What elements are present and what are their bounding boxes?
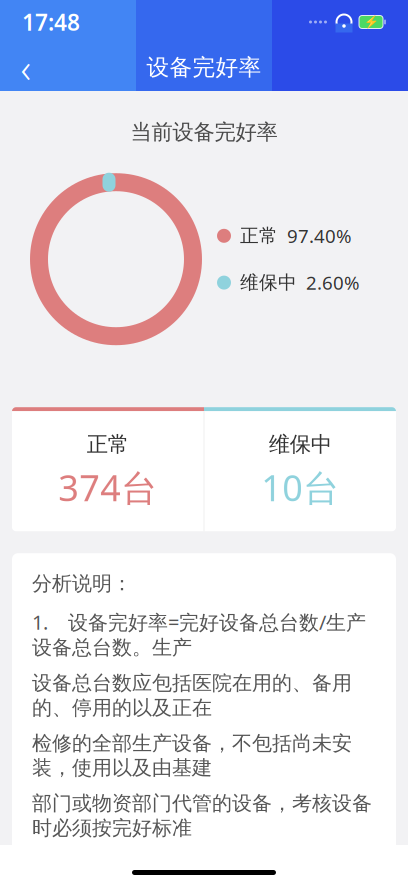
staticText: ‹ — [20, 41, 31, 94]
staticText: 当前设备完好率 — [130, 119, 277, 145]
staticText: 维保中 — [240, 271, 297, 294]
staticText: 正常 — [87, 431, 129, 457]
staticText: 1. 设备完好率=完好设备总台数/生产设备总台数。生产 — [32, 609, 366, 660]
staticText: 2.60% — [306, 270, 360, 295]
staticText: 10台 — [261, 463, 339, 511]
staticText: 部门或物资部门代管的设备，考核设备时必须按完好标准 — [32, 791, 372, 840]
staticText: ⚡ — [363, 15, 378, 29]
staticText: 正常 — [240, 224, 278, 247]
staticText: 17:48 — [22, 7, 80, 37]
staticText: 逐台衡量，不能采取抽查推算的办法。设备完好率一般考 — [32, 851, 372, 883]
staticText: 分析说明： — [32, 571, 132, 596]
staticText: 374台 — [58, 463, 157, 511]
staticText: 设备总台数应包括医院在用的、备用的、停用的以及正在 — [32, 671, 352, 720]
staticText: 维保中 — [269, 431, 332, 457]
button[interactable]: 返回 — [4, 45, 48, 89]
staticText: 检修的全部生产设备，不包括尚未安装，使用以及由基建 — [32, 731, 352, 780]
staticText: 设备完好率 — [146, 54, 261, 81]
staticText: 97.40% — [287, 223, 352, 248]
